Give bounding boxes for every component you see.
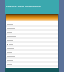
staticText: CREATE NEW REMINDER bbox=[6, 4, 41, 7]
button[interactable]: CREATE NEW REMINDER bbox=[5, 0, 59, 14]
